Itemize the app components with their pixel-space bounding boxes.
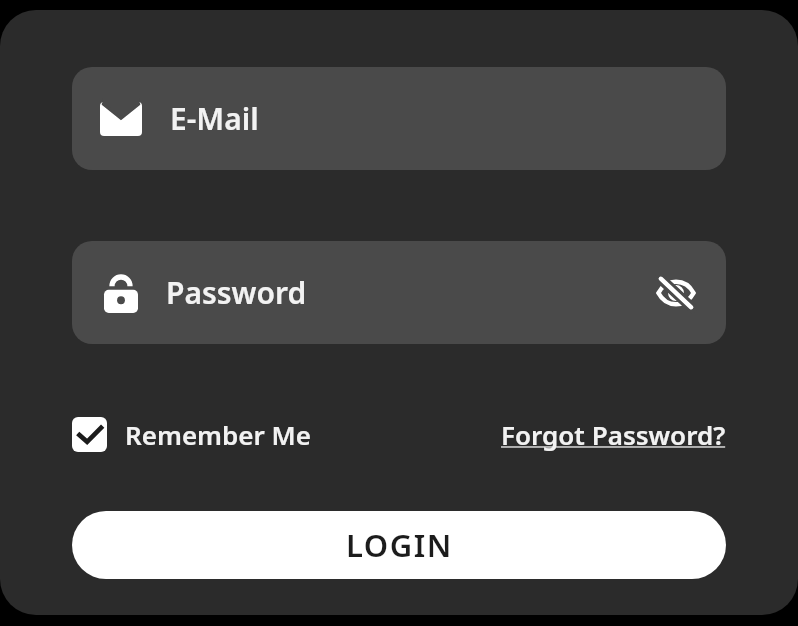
staticText: Password [166,272,307,313]
staticText: LOGIN [346,524,453,566]
button[interactable]: Remember Me [72,417,311,452]
button[interactable]: Forgot Password? [501,417,726,452]
button[interactable]: Password [72,241,726,344]
button[interactable]: E-Mail [72,67,726,170]
button[interactable]: LOGIN [72,511,726,579]
button[interactable]: Show password [652,269,700,317]
staticText: Remember Me [125,417,311,452]
staticText: E-Mail [170,98,259,139]
staticText: Forgot Password? [501,417,726,452]
